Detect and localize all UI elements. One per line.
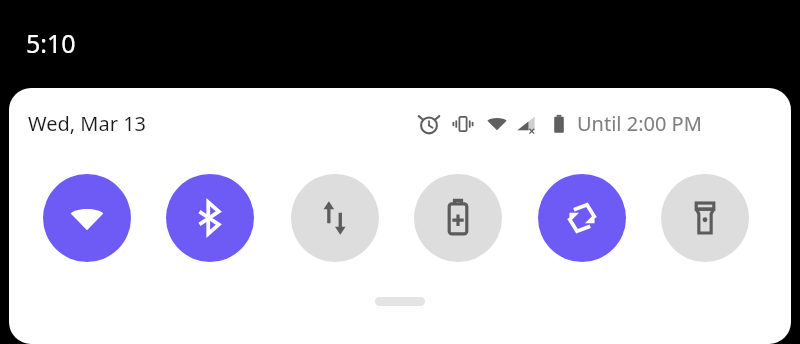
button[interactable]: Mobile data [291, 174, 379, 262]
button[interactable]: Flashlight [661, 174, 749, 262]
button[interactable] [375, 297, 425, 306]
button[interactable]: Battery Saver [414, 174, 502, 262]
staticText: Wed, Mar 13 [28, 110, 147, 137]
button[interactable]: Auto-rotate [538, 174, 626, 262]
button[interactable]: Wi-Fi [43, 174, 131, 262]
staticText: 5:10 [26, 26, 76, 60]
staticText: Until 2:00 PM [577, 110, 702, 137]
button[interactable]: Bluetooth [166, 174, 254, 262]
